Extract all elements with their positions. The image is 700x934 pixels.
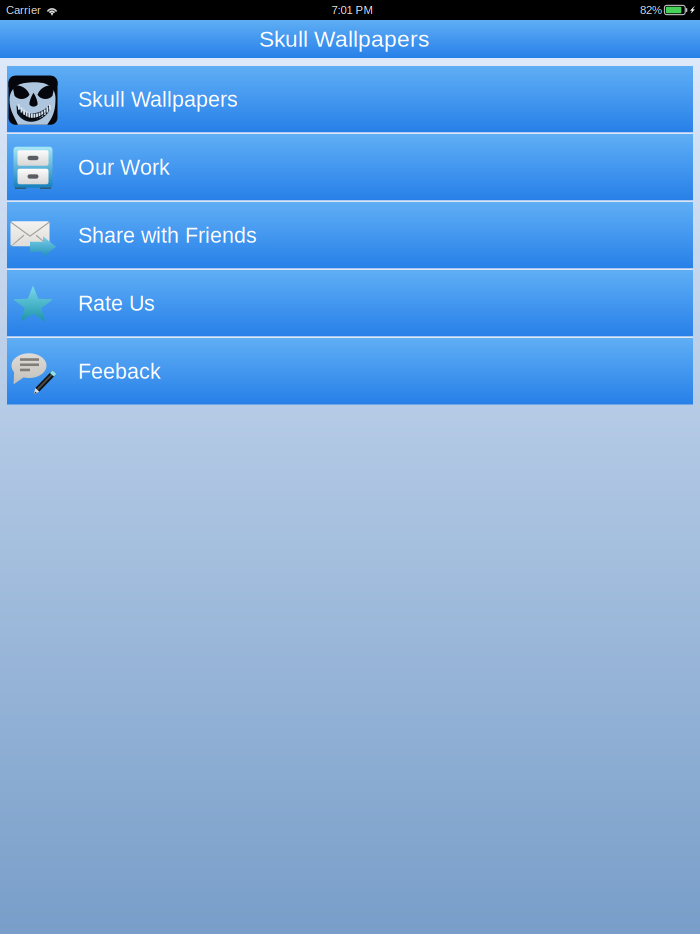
staticText: 82% bbox=[640, 4, 662, 16]
staticText: Our Work bbox=[78, 155, 170, 179]
button[interactable]: Skull Wallpapers bbox=[0, 20, 700, 58]
staticText: Carrier bbox=[6, 4, 41, 16]
button[interactable]: Share with Friends bbox=[7, 202, 693, 268]
staticText: 7:01 PM bbox=[331, 4, 372, 16]
button[interactable]: Rate Us bbox=[7, 270, 693, 336]
staticText: Skull Wallpapers bbox=[259, 26, 429, 52]
button[interactable]: Skull Wallpapers bbox=[7, 66, 693, 132]
button[interactable]: Feeback bbox=[7, 338, 693, 404]
staticText: Share with Friends bbox=[78, 223, 257, 247]
button[interactable]: Our Work bbox=[7, 134, 693, 200]
staticText: Feeback bbox=[78, 359, 161, 383]
staticText: Rate Us bbox=[78, 291, 155, 315]
staticText: Skull Wallpapers bbox=[78, 87, 238, 111]
